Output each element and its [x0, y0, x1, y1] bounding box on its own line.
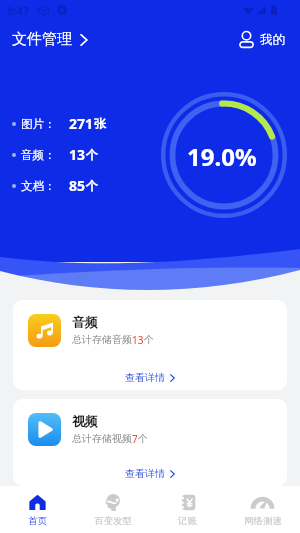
button[interactable]: 百变发型	[75, 488, 150, 533]
staticText: 首页	[28, 515, 47, 527]
staticText: 音频：	[21, 148, 56, 162]
staticText: 记账	[178, 515, 197, 527]
staticText: 音频	[72, 314, 98, 330]
staticText: 百变发型	[94, 515, 132, 527]
staticText: 19.0%	[187, 140, 257, 173]
staticText: 271	[69, 114, 94, 133]
staticText: 13	[132, 333, 144, 347]
other: 首页	[29, 494, 46, 511]
staticText: 文档：	[21, 179, 56, 193]
button[interactable]: 文件管理	[12, 26, 88, 53]
staticText: 文件管理	[12, 30, 72, 49]
staticText: 视频	[72, 413, 98, 429]
button[interactable]: 存储使用率 19.0%	[163, 94, 285, 216]
staticText: 查看详情	[125, 371, 165, 384]
staticText: 查看详情	[125, 467, 165, 480]
staticText: 图片：	[21, 117, 56, 131]
staticText: 85	[69, 176, 86, 195]
button[interactable]: 记账	[150, 488, 225, 533]
button[interactable]: 查看详情	[13, 371, 287, 384]
staticText: 个	[86, 178, 98, 193]
other: 记账	[179, 494, 196, 511]
staticText: 13	[69, 145, 86, 164]
button[interactable]: 首页	[0, 488, 75, 533]
button[interactable]: 我的	[239, 28, 285, 52]
staticText: 7	[132, 432, 138, 446]
staticText: 个	[138, 432, 148, 445]
button[interactable]: 查看详情	[13, 467, 287, 480]
button[interactable]: 音频	[13, 300, 287, 390]
button[interactable]: 视频	[13, 399, 287, 486]
other: 百变发型	[104, 494, 121, 511]
staticText: 总计存储音频	[72, 333, 132, 346]
staticText: 9:47	[7, 3, 29, 18]
staticText: 个	[144, 333, 154, 346]
staticText: 张	[94, 116, 106, 131]
staticText: 网络测速	[244, 515, 282, 527]
staticText: 个	[86, 147, 98, 162]
button[interactable]: 网络测速	[225, 488, 300, 533]
staticText: 我的	[260, 32, 285, 48]
other: 网络测速	[254, 494, 271, 511]
staticText: 总计存储视频	[72, 432, 132, 445]
